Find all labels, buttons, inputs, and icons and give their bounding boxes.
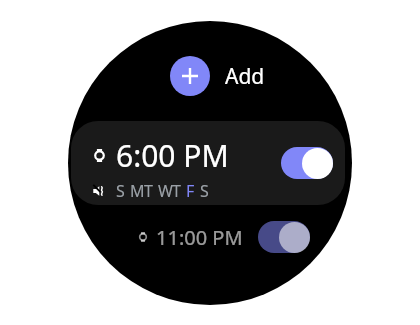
staticText: S [116, 180, 130, 202]
staticText: S [200, 180, 214, 202]
staticText: 11:00 PM [156, 224, 243, 251]
staticText: F [186, 180, 200, 202]
button[interactable]: 11:00 PM [138, 221, 310, 253]
staticText: M [130, 180, 144, 202]
staticText: Add [225, 62, 265, 91]
staticText: W [158, 180, 172, 202]
staticText: T [172, 180, 186, 202]
staticText: T [144, 180, 158, 202]
button[interactable]: 6:00 PM [71, 121, 345, 205]
button[interactable]: Add [168, 54, 267, 98]
staticText: 6:00 PM [116, 135, 229, 176]
